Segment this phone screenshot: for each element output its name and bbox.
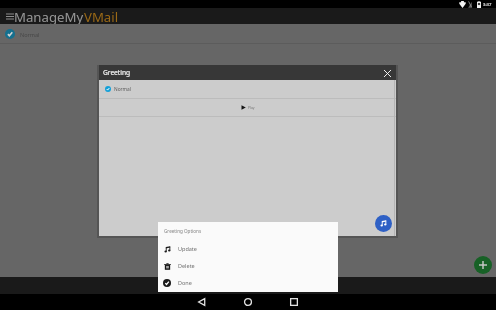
- staticText: Normal: [114, 86, 131, 93]
- staticText: Greeting: [103, 68, 131, 77]
- button[interactable]: Play: [99, 99, 396, 116]
- staticText: Normal: [20, 31, 40, 38]
- staticText: VMail: [84, 8, 119, 24]
- button[interactable]: Done: [158, 274, 338, 291]
- button[interactable]: Update: [158, 240, 338, 257]
- staticText: Delete: [178, 262, 195, 269]
- staticText: ManageMy: [14, 8, 84, 24]
- staticText: 3:37: [483, 2, 492, 8]
- button[interactable]: Home: [240, 294, 256, 310]
- staticText: Greeting Options: [164, 228, 202, 234]
- staticText: Play: [248, 105, 255, 110]
- staticText: Update: [178, 245, 197, 252]
- button[interactable]: Back: [194, 294, 210, 310]
- button[interactable]: Recent apps: [286, 294, 302, 310]
- staticText: Done: [178, 279, 192, 286]
- button[interactable]: Record greeting: [375, 215, 392, 232]
- button[interactable]: Normal: [99, 80, 396, 98]
- button[interactable]: Open navigation drawer: [2, 9, 17, 24]
- button[interactable]: Add new greeting: [474, 256, 492, 274]
- button[interactable]: Delete: [158, 257, 338, 274]
- button[interactable]: Normal: [0, 24, 496, 44]
- button[interactable]: Close: [381, 67, 393, 79]
